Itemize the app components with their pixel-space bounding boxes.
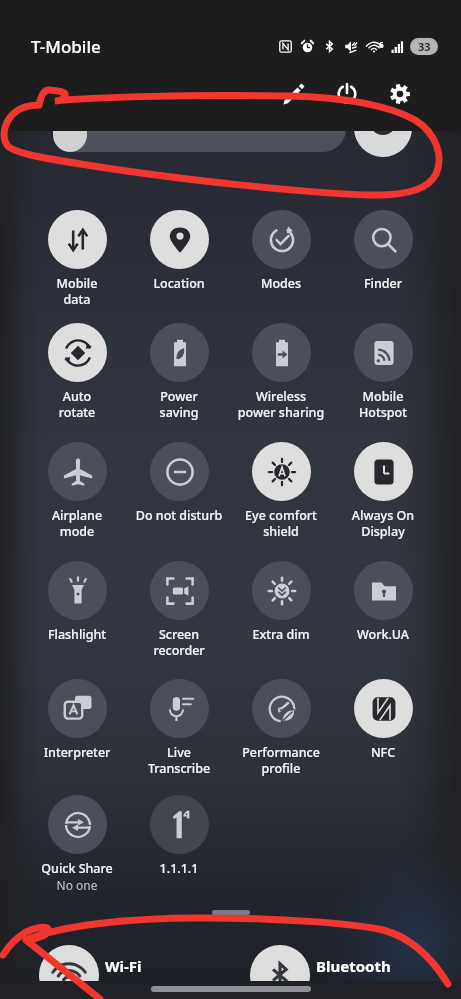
button[interactable]: Wi-Fi [22,921,212,981]
button[interactable]: NFC [333,679,433,761]
button[interactable]: Mobile data [27,210,127,307]
staticText: 6 [379,39,384,50]
staticText: Interpreter [27,744,127,761]
staticText: Finder [333,275,433,292]
staticText: Wi-Fi [105,956,142,976]
button[interactable]: Quick Share [27,795,127,893]
button[interactable]: Brightness [0,131,461,163]
button[interactable]: 1.1.1.1 [129,795,229,877]
staticText: T-Mobile [31,35,101,58]
button[interactable]: Eye comfort shield [231,442,331,539]
staticText: Power saving [129,388,229,420]
staticText: Airplane mode [27,507,127,539]
staticText: 33 [418,39,431,54]
button[interactable]: Live Transcribe [129,679,229,776]
staticText: Always On Display [333,507,433,539]
staticText: Auto rotate [27,388,127,420]
staticText: Mobile data [27,275,127,307]
staticText: Live Transcribe [129,744,229,776]
button[interactable]: Power saving [129,323,229,420]
staticText: Screen recorder [129,626,229,658]
button[interactable]: Mobile Hotspot [333,323,433,420]
button[interactable]: Extra dim [231,561,331,643]
staticText: 1.1.1.1 [129,860,229,877]
button[interactable]: Location [129,210,229,292]
button[interactable]: Modes [231,210,331,292]
staticText: Modes [231,275,331,292]
button[interactable]: Settings [383,77,417,111]
button[interactable]: Edit [277,77,311,111]
button[interactable]: Do not disturb [129,442,229,524]
button[interactable]: Finder [333,210,433,292]
staticText: Bluetooth [316,956,391,976]
staticText: Quick Share [27,860,127,877]
button[interactable]: Always On Display [333,442,433,539]
button[interactable]: Auto rotate [27,323,127,420]
staticText: Do not disturb [129,507,229,524]
staticText: NFC [333,744,433,761]
button[interactable]: Flashlight [27,561,127,643]
staticText: Work.UA [333,626,433,643]
staticText: Wireless power sharing [231,388,331,420]
staticText: Location [129,275,229,292]
button[interactable]: Airplane mode [27,442,127,539]
button[interactable]: Screen recorder [129,561,229,658]
staticText: No one [27,877,127,893]
staticText: Flashlight [27,626,127,643]
staticText: Performance profile [231,744,331,776]
button[interactable]: Wireless power sharing [231,323,331,420]
button[interactable]: Bluetooth [232,921,432,981]
button[interactable]: Power [330,77,364,111]
staticText: Mobile Hotspot [333,388,433,420]
button[interactable]: Performance profile [231,679,331,776]
button[interactable]: Interpreter [27,679,127,761]
staticText: Eye comfort shield [231,507,331,539]
staticText: Extra dim [231,626,331,643]
button[interactable]: Work.UA [333,561,433,643]
